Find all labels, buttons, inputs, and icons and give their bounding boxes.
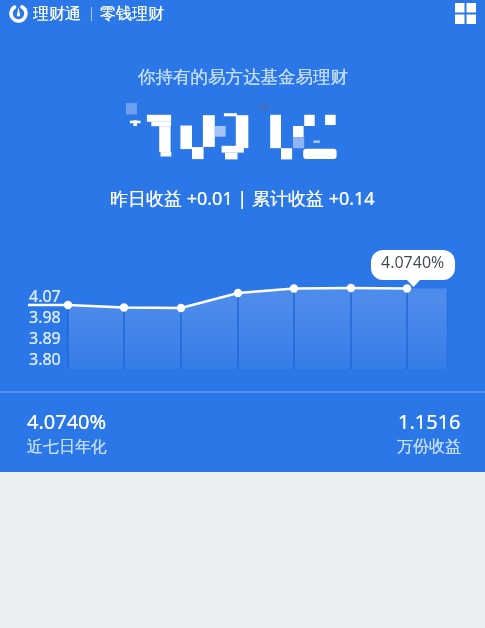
staticText: 零钱理财 [100,4,164,24]
staticText: 4.0740% [27,408,107,435]
staticText: 3.89 [29,327,61,349]
staticText: 4.07 [29,285,61,307]
staticText: 3.80 [29,348,61,370]
button[interactable]: More options [452,0,479,27]
staticText: 万份收益 [397,437,461,457]
staticText: 1.1516 [398,408,461,435]
staticText: 昨日收益 +0.01 | 累计收益 +0.14 [110,186,375,211]
staticText: 理财通 [33,4,81,24]
staticText: 3.98 [29,306,61,328]
staticText: 你持有的易方达基金易理财 [138,66,348,88]
staticText: 近七日年化 [27,437,107,457]
staticText: 4.0740% [381,251,445,273]
